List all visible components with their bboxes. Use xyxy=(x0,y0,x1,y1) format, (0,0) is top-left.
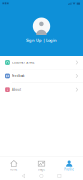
staticText: Customer Service xyxy=(12,61,35,64)
button[interactable]: Sign Up | Login xyxy=(26,37,57,43)
button[interactable]: Home xyxy=(0,157,28,172)
staticText: Profile xyxy=(64,168,74,171)
button[interactable]: Customer Service xyxy=(0,56,83,69)
button[interactable]: Back xyxy=(15,174,32,178)
button[interactable]: Image xyxy=(28,157,55,172)
button[interactable]: About xyxy=(0,83,83,96)
staticText: Image xyxy=(37,168,45,171)
staticText: About xyxy=(12,88,21,91)
button[interactable]: Home xyxy=(32,174,50,178)
button[interactable]: Profile xyxy=(55,157,83,172)
button[interactable]: Recent apps xyxy=(50,174,68,178)
button[interactable]: Feedback xyxy=(0,69,83,83)
staticText: Sign Up | Login xyxy=(26,37,57,43)
staticText: Feedback xyxy=(12,74,24,78)
staticText: Home xyxy=(10,168,18,171)
